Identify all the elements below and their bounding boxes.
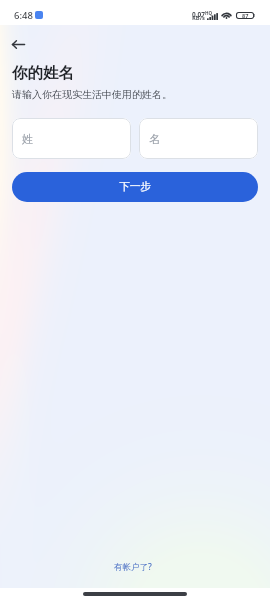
button[interactable]: 名 bbox=[139, 118, 258, 159]
button[interactable]: 姓 bbox=[12, 118, 131, 159]
staticText: 6:48 bbox=[14, 9, 33, 22]
button[interactable]: 下一步 bbox=[12, 172, 258, 202]
staticText: 下一步 bbox=[119, 180, 152, 194]
staticText: 姓 bbox=[22, 132, 33, 146]
staticText: 你的姓名 bbox=[12, 63, 74, 83]
staticText: HQ bbox=[205, 10, 213, 16]
staticText: 名 bbox=[149, 132, 160, 146]
staticText: KB/s bbox=[192, 14, 206, 22]
button[interactable]: Back bbox=[6, 32, 30, 56]
button[interactable]: 有帐户了? bbox=[114, 561, 152, 573]
staticText: 请输入你在现实生活中使用的姓名。 bbox=[12, 88, 172, 101]
staticText: 有帐户了? bbox=[114, 561, 152, 573]
staticText: 87 bbox=[242, 12, 249, 19]
staticText: 0.07 bbox=[192, 10, 205, 19]
